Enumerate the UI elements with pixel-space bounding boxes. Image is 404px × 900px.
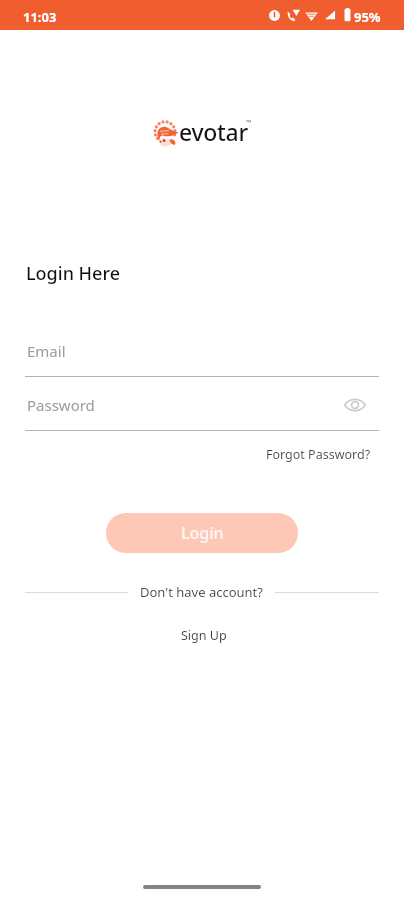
staticText: Login Here: [26, 261, 120, 286]
button[interactable]: Login: [106, 513, 298, 553]
staticText: ™: [246, 118, 252, 128]
staticText: Forgot Password?: [266, 446, 371, 463]
button[interactable]: Email: [25, 337, 379, 377]
staticText: evotar: [179, 116, 248, 147]
button[interactable]: Forgot Password?: [264, 444, 373, 465]
staticText: Email: [27, 341, 66, 361]
staticText: 95%: [354, 8, 381, 26]
staticText: 11:03: [23, 8, 57, 26]
staticText: Password: [27, 395, 95, 415]
staticText: Don't have account?: [140, 583, 263, 601]
button[interactable]: Sign Up: [171, 623, 237, 648]
button[interactable]: Password: [25, 391, 379, 431]
button[interactable]: Show password: [344, 396, 366, 414]
staticText: Login: [181, 522, 224, 544]
